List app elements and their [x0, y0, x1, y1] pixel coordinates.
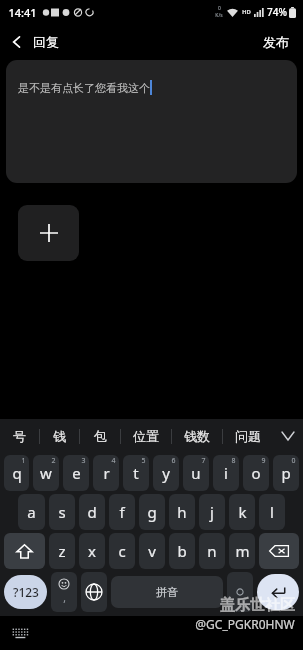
staticText: s [58, 502, 66, 522]
staticText: 包 [94, 428, 107, 444]
button[interactable]: 包 [80, 428, 120, 444]
staticText: i [224, 463, 228, 483]
button[interactable]: u [183, 455, 209, 491]
button[interactable]: l [259, 494, 285, 530]
staticText: 拼音 [156, 585, 178, 599]
staticText: 0 [291, 456, 296, 466]
staticText: 1 [21, 456, 26, 466]
button[interactable]: h [169, 494, 195, 530]
button[interactable]: v [139, 533, 165, 569]
staticText: @GC_PGKR0HNW [195, 616, 295, 632]
staticText: f [119, 502, 125, 522]
staticText: q [12, 463, 22, 483]
button[interactable]: Shift [4, 533, 45, 569]
button[interactable]: 钱数 [172, 428, 222, 444]
button[interactable]: Hide keyboard [12, 628, 29, 639]
staticText: u [191, 463, 201, 483]
button[interactable]: Enter [257, 574, 299, 610]
staticText: 回复 [33, 34, 59, 50]
button[interactable]: s [49, 494, 75, 530]
staticText: 8 [231, 456, 236, 466]
staticText: k [238, 502, 247, 522]
button[interactable]: m [229, 533, 255, 569]
button[interactable]: q [4, 455, 29, 491]
staticText: m [235, 541, 250, 561]
staticText: 钱数 [184, 428, 210, 444]
button[interactable]: More suggestions [273, 432, 303, 440]
button[interactable]: n [199, 533, 225, 569]
button[interactable]: ?123 [4, 575, 47, 609]
button[interactable]: p [273, 455, 299, 491]
staticText: , [63, 591, 66, 605]
staticText: t [133, 463, 139, 483]
button[interactable]: 是不是有点长了您看我这个 [6, 60, 297, 183]
staticText: r [103, 463, 110, 483]
button[interactable]: g [139, 494, 165, 530]
button[interactable]: 钱 [40, 428, 79, 444]
button[interactable]: a [18, 494, 45, 530]
staticText: g [147, 502, 157, 522]
button[interactable]: 发布 [249, 28, 303, 56]
staticText: l [270, 502, 274, 522]
button[interactable]: b [169, 533, 195, 569]
button[interactable]: Back [0, 29, 30, 55]
button[interactable]: Change language [81, 572, 107, 612]
button[interactable]: d [79, 494, 105, 530]
staticText: y [162, 463, 170, 483]
button[interactable]: Emoji [51, 572, 77, 612]
staticText: z [58, 541, 66, 561]
staticText: 号 [13, 428, 26, 444]
staticText: p [281, 463, 291, 483]
staticText: 盖乐世社区 [220, 596, 295, 615]
button[interactable]: Add image [18, 205, 79, 261]
staticText: 0 [218, 5, 221, 12]
button[interactable]: j [199, 494, 225, 530]
staticText: 位置 [133, 428, 159, 444]
staticText: j [210, 502, 214, 522]
staticText: d [87, 502, 97, 522]
button[interactable]: Backspace [259, 533, 299, 569]
staticText: 钱 [53, 428, 66, 444]
staticText: HD [242, 8, 251, 16]
button[interactable]: i [213, 455, 239, 491]
staticText: ?123 [13, 584, 39, 600]
staticText: n [207, 541, 217, 561]
button[interactable]: y [153, 455, 179, 491]
button[interactable]: f [109, 494, 135, 530]
button[interactable]: k [229, 494, 255, 530]
staticText: v [148, 541, 156, 561]
button[interactable]: w [33, 455, 59, 491]
button[interactable]: e [63, 455, 89, 491]
button[interactable]: 回复 [33, 34, 59, 50]
button[interactable]: x [79, 533, 105, 569]
staticText: a [27, 502, 36, 522]
staticText: o [251, 463, 261, 483]
staticText: 是不是有点长了您看我这个 [18, 81, 150, 95]
button[interactable]: 问题 [223, 428, 273, 444]
staticText: w [40, 463, 52, 483]
button[interactable]: 位置 [121, 428, 171, 444]
staticText: 14:41 [8, 5, 37, 20]
staticText: b [177, 541, 187, 561]
staticText: 6 [171, 456, 176, 466]
staticText: h [177, 502, 187, 522]
staticText: 9 [261, 456, 266, 466]
staticText: e [72, 463, 81, 483]
button[interactable]: Period [227, 572, 253, 612]
staticText: K/s [215, 12, 223, 19]
staticText: x [88, 541, 96, 561]
staticText: c [118, 541, 126, 561]
staticText: 7 [201, 456, 206, 466]
staticText: 74% [267, 5, 287, 19]
button[interactable]: c [109, 533, 135, 569]
staticText: 5 [141, 456, 146, 466]
button[interactable]: r [93, 455, 119, 491]
button[interactable]: 拼音 [111, 576, 223, 608]
staticText: 3 [81, 456, 86, 466]
staticText: 问题 [235, 428, 261, 444]
staticText: 发布 [263, 34, 289, 50]
button[interactable]: t [123, 455, 149, 491]
button[interactable]: o [243, 455, 269, 491]
button[interactable]: z [49, 533, 75, 569]
button[interactable]: 号 [0, 428, 39, 444]
